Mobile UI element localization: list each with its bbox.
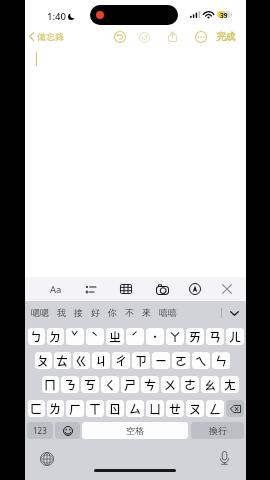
staticText: ㄏ bbox=[69, 400, 82, 417]
button[interactable]: Markup bbox=[185, 277, 205, 301]
button[interactable]: 接 bbox=[70, 304, 87, 321]
button[interactable]: 完成 bbox=[216, 31, 236, 43]
button[interactable]: ㄞ bbox=[186, 328, 204, 345]
button[interactable]: ㄝ bbox=[166, 400, 184, 417]
button[interactable]: 來 bbox=[138, 304, 155, 321]
button[interactable]: Text format bbox=[46, 277, 66, 301]
staticText: 我 bbox=[57, 307, 66, 318]
button[interactable]: ㄓ bbox=[106, 328, 124, 345]
button[interactable]: ㄌ bbox=[47, 400, 64, 417]
button[interactable]: ㄠ bbox=[201, 376, 219, 393]
button[interactable]: Table bbox=[116, 277, 136, 301]
button[interactable]: 空格 bbox=[82, 422, 188, 439]
button[interactable]: ㄆ bbox=[35, 352, 52, 369]
staticText: ㄖ bbox=[109, 400, 122, 417]
staticText: ㄓ bbox=[109, 328, 122, 345]
button[interactable]: Camera bbox=[152, 277, 172, 301]
button[interactable]: ㄕ bbox=[121, 376, 139, 393]
button[interactable]: Share bbox=[165, 29, 179, 43]
button[interactable]: Redo bbox=[137, 30, 151, 44]
staticText: ㄜ bbox=[184, 376, 197, 393]
button[interactable]: Dictation bbox=[216, 450, 232, 466]
button[interactable]: ㄊ bbox=[54, 352, 71, 369]
staticText: ˇ bbox=[71, 328, 79, 345]
button[interactable]: More candidates bbox=[228, 305, 241, 321]
button[interactable]: ㄐ bbox=[92, 352, 110, 369]
button[interactable]: ㄋ bbox=[61, 376, 79, 393]
button[interactable]: Emoji bbox=[55, 422, 80, 439]
button[interactable]: ㄨ bbox=[161, 376, 179, 393]
button[interactable]: Close keyboard bbox=[217, 277, 237, 301]
button[interactable]: 你 bbox=[104, 304, 121, 321]
button[interactable]: Backspace bbox=[226, 400, 244, 417]
button[interactable]: 嘻嘻 bbox=[155, 304, 181, 321]
button[interactable]: 換行 bbox=[191, 422, 244, 439]
staticText: ㄛ bbox=[175, 352, 188, 369]
button[interactable]: ˊ bbox=[126, 328, 144, 345]
button[interactable]: 備忘錄 bbox=[25, 30, 68, 43]
button[interactable]: ㄚ bbox=[166, 328, 184, 345]
button[interactable]: ㄛ bbox=[172, 352, 190, 369]
staticText: ㄗ bbox=[135, 352, 148, 369]
button[interactable]: ㄅ bbox=[28, 328, 45, 345]
button[interactable]: ㄤ bbox=[221, 376, 239, 393]
staticText: ㄌ bbox=[49, 400, 62, 417]
staticText: ㄔ bbox=[115, 352, 128, 369]
button[interactable]: ˋ bbox=[86, 328, 104, 345]
button[interactable]: ㄢ bbox=[206, 328, 224, 345]
button[interactable]: 好 bbox=[87, 304, 104, 321]
button[interactable]: ㄩ bbox=[146, 400, 164, 417]
button[interactable]: 嗯嗯 bbox=[27, 304, 53, 321]
button[interactable]: ㄟ bbox=[192, 352, 210, 369]
button[interactable]: ㄉ bbox=[47, 328, 64, 345]
button[interactable]: ˙ bbox=[146, 328, 164, 345]
staticText: 1:40 bbox=[47, 10, 66, 23]
staticText: ㄉ bbox=[49, 328, 62, 345]
button[interactable]: ㄣ bbox=[212, 352, 230, 369]
staticText: ㄒ bbox=[89, 400, 102, 417]
button[interactable]: ㄡ bbox=[186, 400, 204, 417]
button[interactable]: ㄥ bbox=[206, 400, 224, 417]
staticText: ㄊ bbox=[56, 352, 69, 369]
staticText: ㄤ bbox=[224, 376, 237, 393]
button[interactable]: 我 bbox=[53, 304, 70, 321]
button[interactable]: ㄧ bbox=[152, 352, 170, 369]
button[interactable]: ㄑ bbox=[101, 376, 119, 393]
button[interactable]: ㄔ bbox=[112, 352, 130, 369]
staticText: ㄕ bbox=[124, 376, 137, 393]
staticText: 接 bbox=[74, 307, 83, 318]
button[interactable]: ㄎ bbox=[81, 376, 99, 393]
button[interactable]: Change keyboard bbox=[39, 451, 55, 467]
staticText: ㄝ bbox=[169, 400, 182, 417]
button[interactable]: ㄇ bbox=[42, 376, 59, 393]
button[interactable]: 123 bbox=[27, 422, 53, 439]
button[interactable]: More bbox=[194, 30, 208, 44]
staticText: ㄢ bbox=[209, 328, 222, 345]
staticText: 嗯嗯 bbox=[31, 307, 49, 318]
staticText: ㄋ bbox=[64, 376, 77, 393]
button[interactable]: ㄦ bbox=[226, 328, 244, 345]
button[interactable]: ㄙ bbox=[126, 400, 144, 417]
button[interactable]: ㄈ bbox=[28, 400, 45, 417]
staticText: ㄣ bbox=[215, 352, 228, 369]
button[interactable]: Checklist bbox=[80, 277, 100, 301]
button[interactable]: ㄖ bbox=[106, 400, 124, 417]
button[interactable]: ㄗ bbox=[132, 352, 150, 369]
button[interactable]: ㄘ bbox=[141, 376, 159, 393]
staticText: ㄈ bbox=[30, 400, 43, 417]
button[interactable]: ㄒ bbox=[86, 400, 104, 417]
button[interactable]: ㄏ bbox=[66, 400, 84, 417]
staticText: ˋ bbox=[91, 328, 99, 345]
staticText: ㄦ bbox=[229, 328, 242, 345]
staticText: ˊ bbox=[131, 328, 139, 345]
button[interactable]: ㄍ bbox=[73, 352, 90, 369]
staticText: ㄥ bbox=[209, 400, 222, 417]
staticText: ㄇ bbox=[44, 376, 57, 393]
button[interactable]: Undo bbox=[113, 30, 127, 44]
staticText: ㄧ bbox=[155, 352, 168, 369]
staticText: ㄟ bbox=[195, 352, 208, 369]
button[interactable]: ˇ bbox=[66, 328, 84, 345]
button[interactable]: ㄜ bbox=[181, 376, 199, 393]
staticText: ㄆ bbox=[37, 352, 50, 369]
button[interactable]: 不 bbox=[121, 304, 138, 321]
